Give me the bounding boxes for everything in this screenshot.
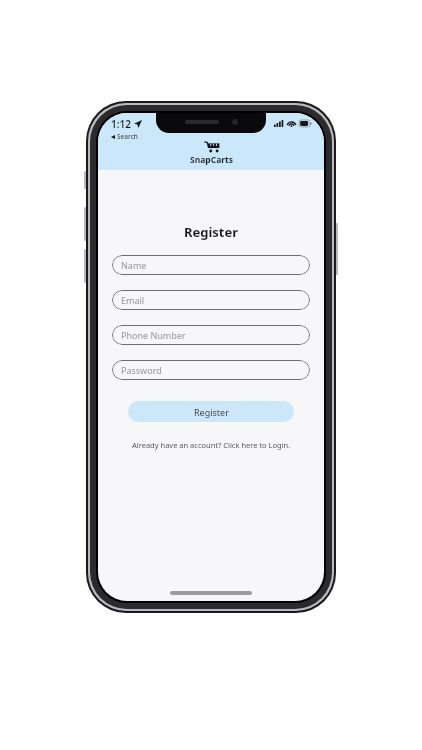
button[interactable]: Already have an account? Click here to L… bbox=[98, 440, 324, 450]
staticText: Register bbox=[194, 406, 229, 418]
staticText: SnapCarts bbox=[190, 154, 233, 166]
staticText: Already have an account? Click here to L… bbox=[132, 440, 291, 450]
staticText: 1:12 bbox=[111, 117, 131, 131]
staticText: Register bbox=[98, 223, 324, 241]
staticText: Name bbox=[121, 259, 147, 271]
staticText: Password bbox=[121, 364, 162, 376]
button[interactable]: Password bbox=[112, 360, 310, 380]
staticText: Phone Number bbox=[121, 329, 186, 341]
other: SnapCarts logo bbox=[204, 140, 220, 153]
staticText: Email bbox=[121, 294, 145, 306]
button[interactable]: Phone Number bbox=[112, 325, 310, 345]
button[interactable]: Email bbox=[112, 290, 310, 310]
button[interactable]: Name bbox=[112, 255, 310, 275]
staticText: Search bbox=[117, 132, 138, 141]
button[interactable]: Register bbox=[128, 401, 294, 422]
